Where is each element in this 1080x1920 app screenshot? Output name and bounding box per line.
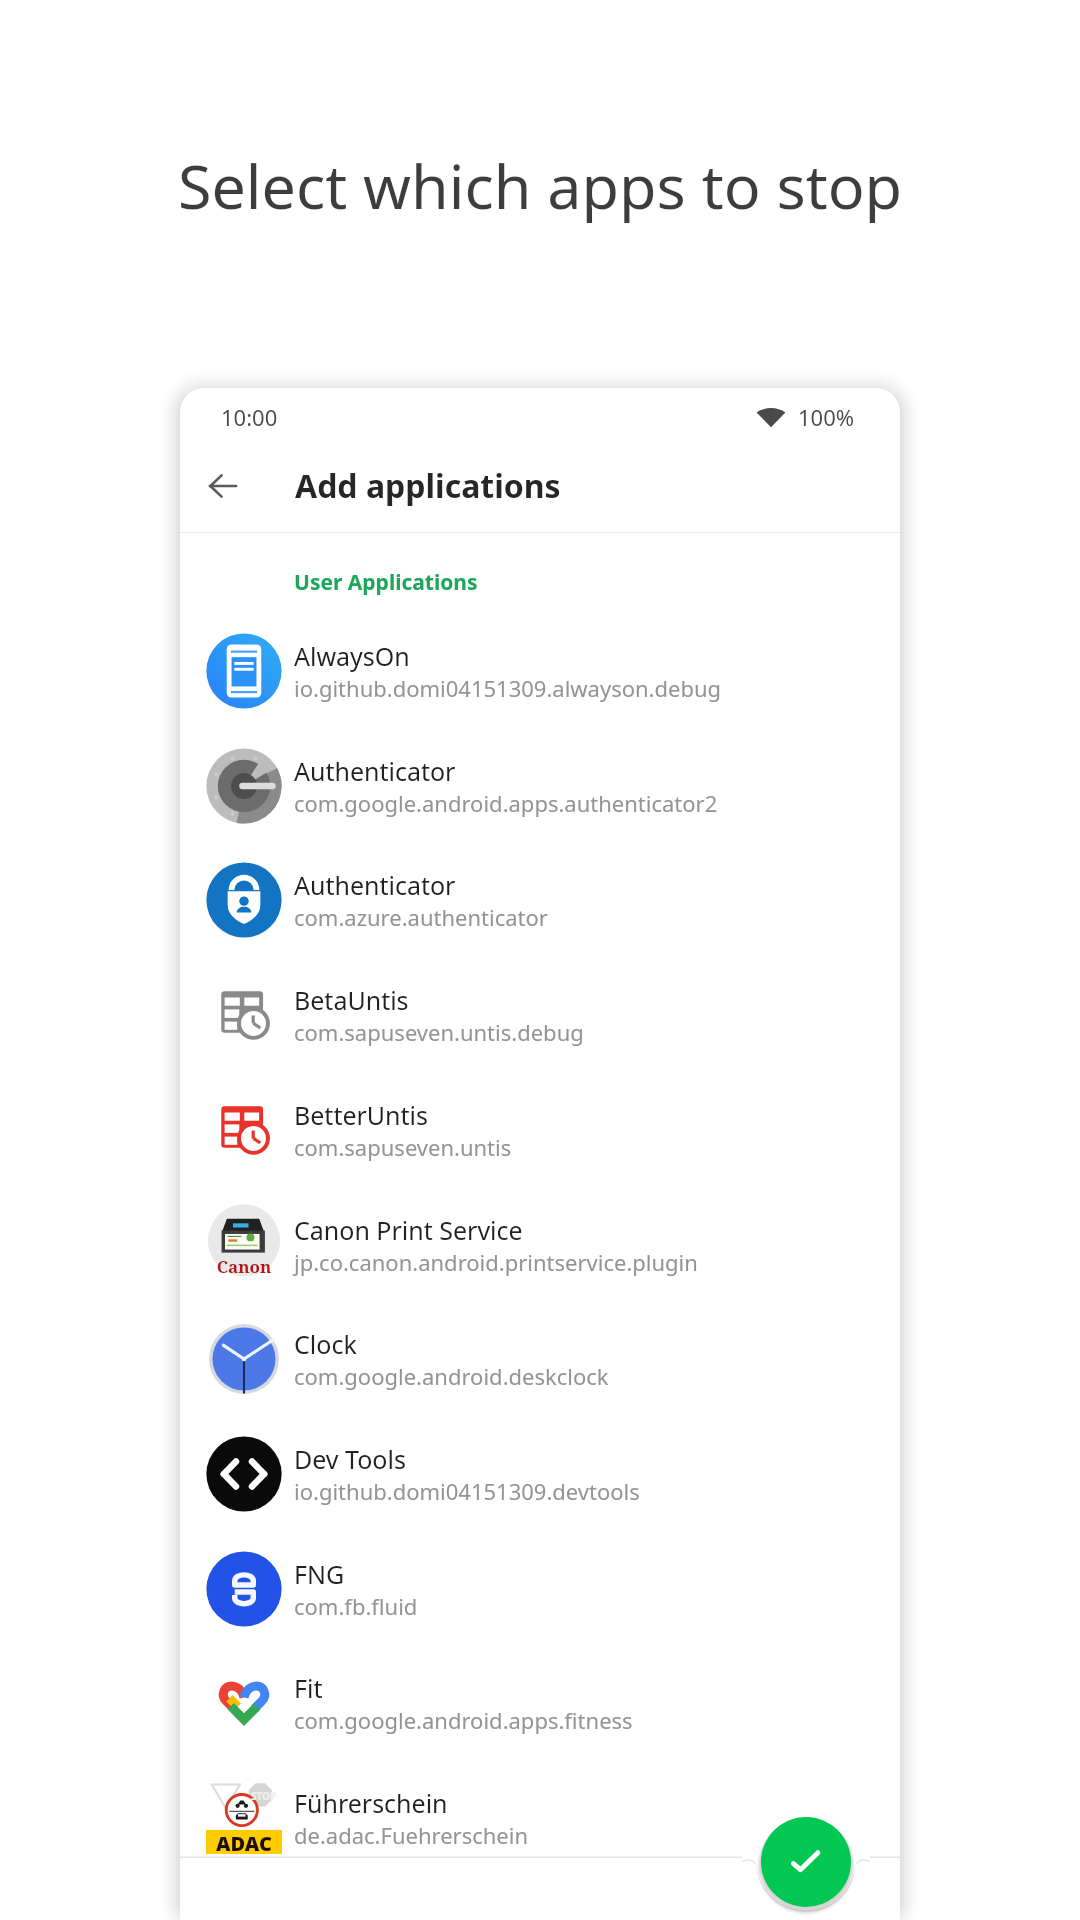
button[interactable]: Authenticator <box>180 842 900 957</box>
staticText: AlwaysOn <box>294 639 410 673</box>
staticText: Canon Print Service <box>294 1213 523 1247</box>
staticText: io.github.domi04151309.alwayson.debug <box>294 673 722 703</box>
staticText: 10:00 <box>221 402 278 432</box>
staticText: jp.co.canon.android.printservice.plugin <box>294 1247 698 1277</box>
staticText: Authenticator <box>294 754 456 788</box>
staticText: STOP <box>251 1789 277 1803</box>
staticText: ADAC <box>206 1830 282 1857</box>
button[interactable]: Clock <box>180 1301 900 1416</box>
staticText: BetaUntis <box>294 983 409 1017</box>
staticText: com.azure.authenticator <box>294 902 548 932</box>
staticText: Führerschein <box>294 1786 448 1820</box>
button[interactable]: Dev Tools <box>180 1416 900 1531</box>
button[interactable]: STOP <box>180 1760 900 1875</box>
button[interactable]: Fit <box>180 1645 900 1760</box>
button[interactable]: FNG <box>180 1531 900 1646</box>
staticText: com.google.android.deskclock <box>294 1361 609 1391</box>
staticText: Fit <box>294 1671 323 1705</box>
staticText: FNG <box>294 1557 345 1591</box>
staticText: de.adac.Fuehrerschein <box>294 1820 529 1850</box>
staticText: 100% <box>798 402 855 432</box>
staticText: Dev Tools <box>294 1442 406 1476</box>
staticText: Select which apps to stop <box>0 144 1080 227</box>
staticText: BetterUntis <box>294 1098 429 1132</box>
staticText: Clock <box>294 1327 357 1361</box>
staticText: Authenticator <box>294 868 456 902</box>
staticText: com.google.android.apps.fitness <box>294 1705 633 1735</box>
staticText: User Applications <box>294 568 478 597</box>
staticText: com.fb.fluid <box>294 1591 418 1621</box>
staticText: com.google.android.apps.authenticator2 <box>294 788 718 818</box>
staticText: Add applications <box>295 464 561 508</box>
staticText: Canon <box>206 1255 282 1278</box>
staticText: io.github.domi04151309.devtools <box>294 1476 640 1506</box>
button[interactable]: Canon <box>180 1187 900 1302</box>
staticText: com.sapuseven.untis <box>294 1132 512 1162</box>
staticText: com.sapuseven.untis.debug <box>294 1017 584 1047</box>
button[interactable]: Confirm selection <box>761 1817 851 1907</box>
button[interactable]: AlwaysOn <box>180 613 900 728</box>
button[interactable]: BetaUntis <box>180 957 900 1072</box>
button[interactable]: BetterUntis <box>180 1072 900 1187</box>
button[interactable]: Back <box>187 450 259 522</box>
button[interactable]: Authenticator <box>180 728 900 843</box>
